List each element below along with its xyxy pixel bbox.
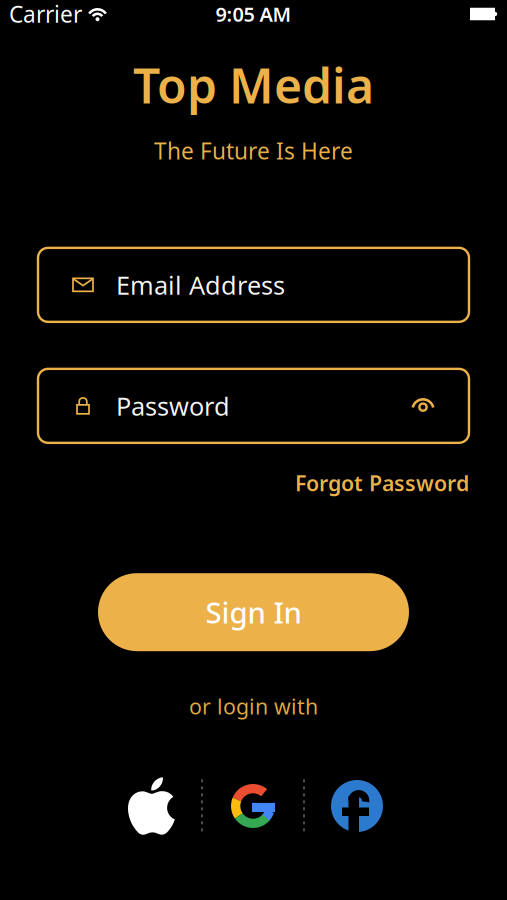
button[interactable] xyxy=(128,777,175,835)
staticText: Email Address xyxy=(116,268,285,302)
button[interactable]: Forgot Password xyxy=(295,469,469,497)
button[interactable] xyxy=(331,780,383,832)
staticText: The Future Is Here xyxy=(154,136,353,166)
button[interactable]: Password xyxy=(38,369,469,443)
staticText: Sign In xyxy=(205,593,301,632)
button[interactable]: Email Address xyxy=(38,248,469,322)
button[interactable] xyxy=(231,784,275,828)
staticText: Carrier xyxy=(9,0,82,29)
staticText: Top Media xyxy=(133,53,374,117)
button[interactable] xyxy=(410,396,443,416)
staticText: or login with xyxy=(189,692,318,720)
staticText: Password xyxy=(116,389,230,423)
button[interactable]: Sign In xyxy=(98,573,409,651)
staticText: Forgot Password xyxy=(295,469,469,497)
staticText: 9:05 AM xyxy=(215,1,291,27)
